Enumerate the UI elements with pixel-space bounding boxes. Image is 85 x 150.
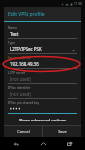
staticText: 11:50 [74,2,83,6]
staticText: Show advanced options [19,118,67,121]
staticText: Edit VPN profile [8,11,45,18]
staticText: IPSec pre-shared key [8,101,40,105]
staticText: 192.168.49.36 [10,61,39,67]
staticText: L2TP secret [8,71,26,75]
button[interactable]: IPSec pre-shared key [8,99,77,114]
staticText: Type [8,41,16,45]
staticText: Save [58,129,67,134]
button[interactable]: Name [8,24,77,39]
button[interactable]: Recent apps [59,137,79,150]
staticText: Server address [8,56,31,60]
staticText: Test [10,31,19,37]
button[interactable]: IPSec identifier [8,84,77,99]
button[interactable]: Save [43,126,81,137]
staticText: IPSec identifier [8,86,31,90]
button[interactable]: Back [6,137,26,150]
staticText: (not used) [10,76,31,82]
staticText: Name [8,26,17,30]
button[interactable]: Home [33,137,53,150]
staticText: • • • • [10,106,21,112]
button[interactable]: Type [8,39,77,54]
staticText: Cancel [17,129,30,134]
button[interactable]: Server address [8,54,77,69]
staticText: (not used) [10,91,31,97]
button[interactable]: L2TP secret [8,69,77,84]
staticText: L2TP/IPSec PSK [10,46,42,52]
button[interactable]: Show advanced options [8,116,77,123]
button[interactable]: Cancel [4,126,42,137]
